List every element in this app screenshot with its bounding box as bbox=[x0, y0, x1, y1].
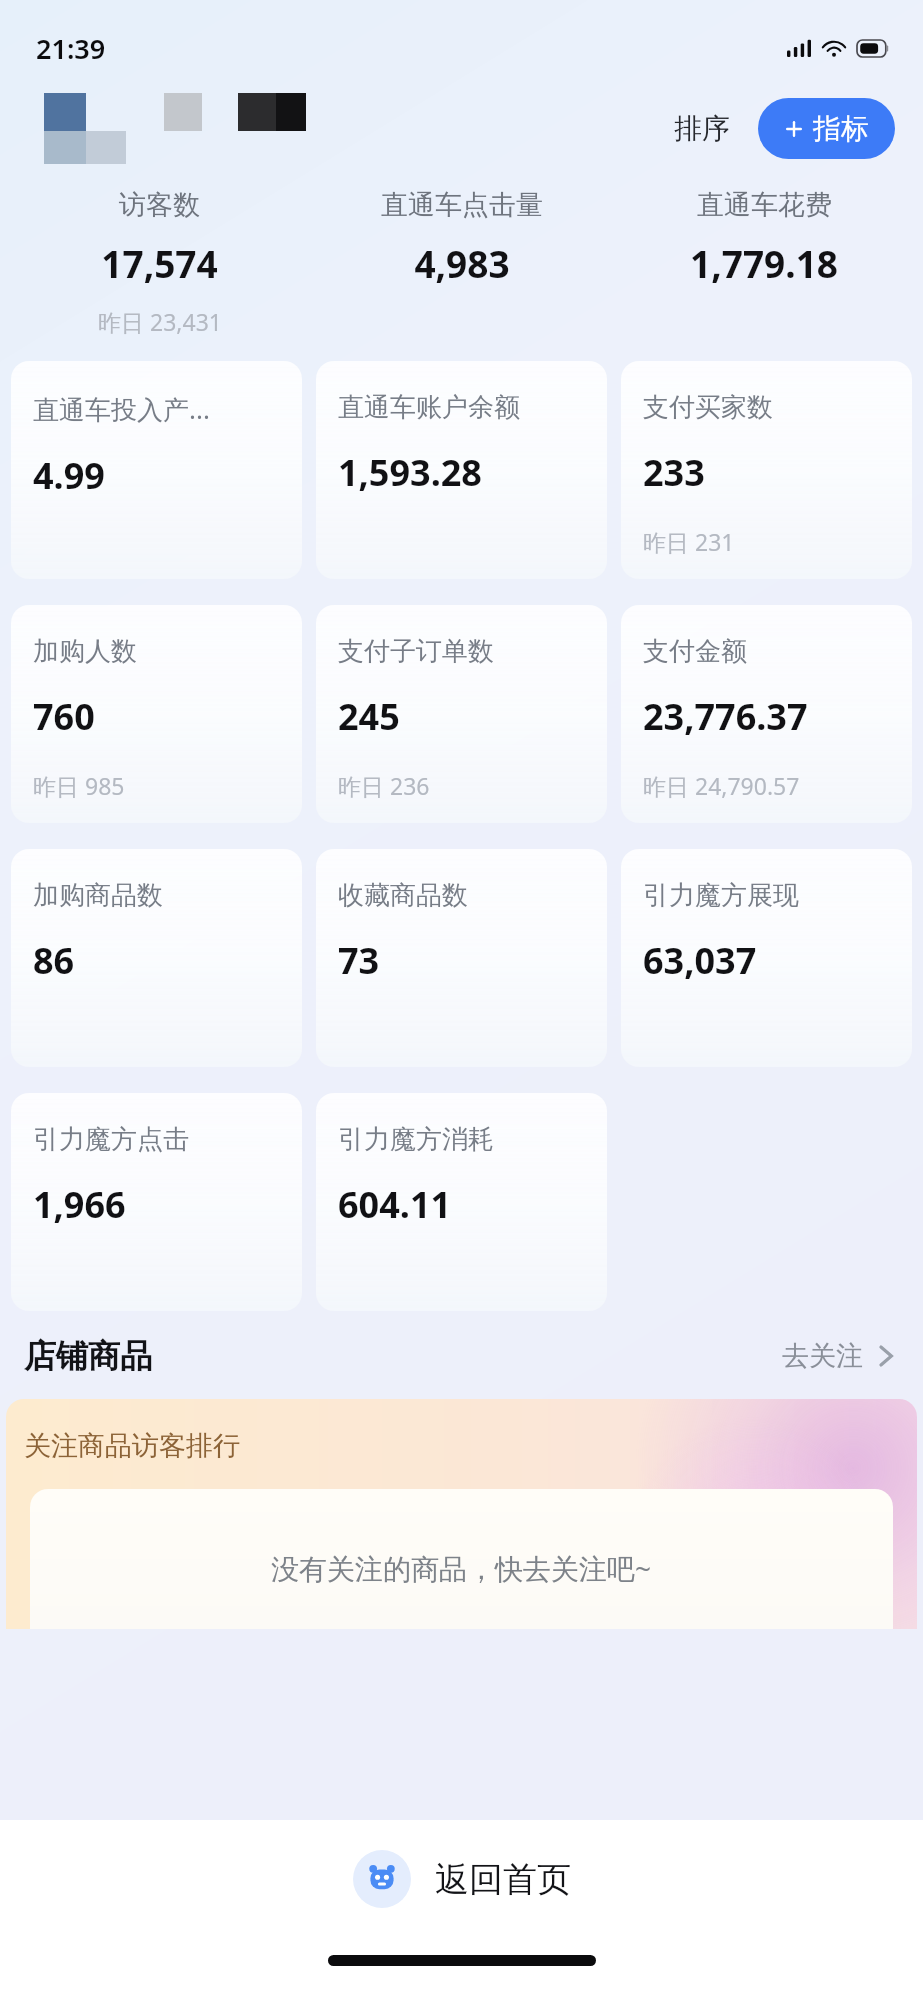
button[interactable]: 去关注 bbox=[776, 1333, 901, 1379]
button[interactable]: 加购商品数 bbox=[11, 849, 302, 1067]
staticText: 1,966 bbox=[33, 1180, 126, 1229]
staticText: 店铺商品 bbox=[24, 1336, 152, 1376]
staticText: 1,779.18 bbox=[690, 238, 838, 288]
staticText: 加购人数 bbox=[33, 635, 137, 668]
staticText: 引力魔方点击 bbox=[33, 1123, 189, 1156]
staticText: 昨日 24,790.57 bbox=[643, 770, 800, 801]
staticText: 21:39 bbox=[36, 30, 106, 67]
button[interactable]: 访客数 bbox=[8, 188, 311, 337]
button[interactable]: 返回首页 bbox=[0, 1820, 923, 1938]
staticText: 昨日 985 bbox=[33, 770, 125, 801]
staticText: 4.99 bbox=[33, 451, 105, 500]
button[interactable]: 支付买家数 bbox=[621, 361, 912, 579]
staticText: 引力魔方消耗 bbox=[338, 1123, 494, 1156]
button[interactable]: 支付子订单数 bbox=[316, 605, 607, 823]
staticText: 昨日 23,431 bbox=[98, 306, 222, 337]
staticText: 昨日 231 bbox=[643, 526, 735, 557]
staticText: 17,574 bbox=[101, 238, 218, 288]
staticText: 访客数 bbox=[119, 188, 200, 222]
staticText: 1,593.28 bbox=[338, 448, 482, 497]
staticText: 去关注 bbox=[782, 1339, 863, 1373]
staticText: 昨日 236 bbox=[338, 770, 430, 801]
button[interactable]: 收藏商品数 bbox=[316, 849, 607, 1067]
staticText: 760 bbox=[33, 692, 95, 741]
staticText: 86 bbox=[33, 936, 75, 985]
button[interactable]: 直通车投入产... bbox=[11, 361, 302, 579]
staticText: 支付买家数 bbox=[643, 391, 773, 424]
staticText: 没有关注的商品，快去关注吧~ bbox=[271, 1549, 652, 1587]
staticText: 233 bbox=[643, 448, 705, 497]
button[interactable]: 支付金额 bbox=[621, 605, 912, 823]
staticText: 直通车投入产... bbox=[33, 391, 210, 427]
staticText: 指标 bbox=[813, 111, 869, 146]
staticText: 返回首页 bbox=[435, 1858, 571, 1901]
button[interactable]: 关注商品访客排行 bbox=[6, 1399, 917, 1629]
staticText: 604.11 bbox=[338, 1180, 452, 1229]
staticText: 引力魔方展现 bbox=[643, 879, 799, 912]
staticText: 直通车花费 bbox=[697, 188, 832, 222]
staticText: 73 bbox=[338, 936, 380, 985]
button[interactable]: 排序 bbox=[666, 105, 738, 152]
button[interactable]: 指标 bbox=[758, 98, 895, 159]
button[interactable]: 引力魔方消耗 bbox=[316, 1093, 607, 1311]
button[interactable]: 直通车花费 bbox=[613, 188, 915, 333]
button[interactable]: 直通车账户余额 bbox=[316, 361, 607, 579]
button[interactable]: 引力魔方展现 bbox=[621, 849, 912, 1067]
staticText: 收藏商品数 bbox=[338, 879, 468, 912]
staticText: 63,037 bbox=[643, 936, 757, 985]
staticText: 支付子订单数 bbox=[338, 635, 494, 668]
staticText: 排序 bbox=[674, 111, 730, 146]
staticText: 直通车账户余额 bbox=[338, 391, 520, 424]
staticText: 23,776.37 bbox=[643, 692, 808, 741]
staticText: 245 bbox=[338, 692, 400, 741]
button[interactable]: 加购人数 bbox=[11, 605, 302, 823]
staticText: 支付金额 bbox=[643, 635, 747, 668]
staticText: 4,983 bbox=[414, 238, 510, 288]
staticText: 加购商品数 bbox=[33, 879, 163, 912]
staticText: 关注商品访客排行 bbox=[24, 1429, 240, 1463]
staticText: 直通车点击量 bbox=[381, 188, 543, 222]
button[interactable]: 直通车点击量 bbox=[311, 188, 613, 333]
button[interactable]: 引力魔方点击 bbox=[11, 1093, 302, 1311]
